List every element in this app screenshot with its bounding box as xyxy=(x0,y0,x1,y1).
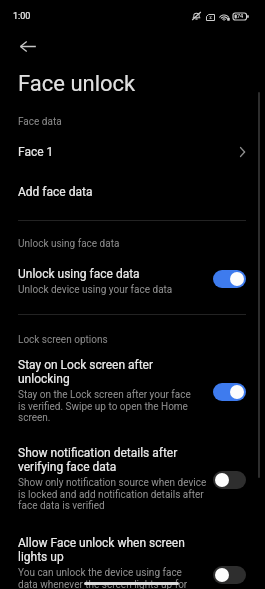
staticText: Face data xyxy=(18,116,62,128)
staticText: 74 xyxy=(237,13,244,19)
staticText: Face unlock xyxy=(18,71,136,97)
staticText: Face 1 xyxy=(18,145,54,159)
staticText: You can unlock the device using face dat… xyxy=(18,567,188,589)
button[interactable]: Add face data xyxy=(0,177,265,209)
button[interactable]: Unlock using face data xyxy=(0,259,265,303)
staticText: Add face data xyxy=(18,185,93,199)
staticText: Stay on the Lock screen after your face … xyxy=(18,389,191,423)
staticText: Unlock using face data xyxy=(18,267,140,281)
staticText: Lock screen options xyxy=(18,334,108,346)
button[interactable]: Toggle on xyxy=(213,383,246,401)
button[interactable]: Show notification details after verifyin… xyxy=(0,438,265,519)
button[interactable]: Toggle off xyxy=(213,471,246,489)
staticText: Show only notification source when devic… xyxy=(18,477,207,511)
staticText: Unlock using face data xyxy=(18,238,120,250)
button[interactable]: Toggle on xyxy=(213,270,246,288)
staticText: Allow Face unlock when screen lights up xyxy=(18,536,185,564)
button[interactable]: Stay on Lock screen after unlocking xyxy=(0,350,265,431)
staticText: Show notification details after verifyin… xyxy=(18,446,178,474)
button[interactable]: Back xyxy=(12,30,44,62)
staticText: Unlock device using your face data xyxy=(18,284,173,296)
button[interactable]: Face 1 xyxy=(0,137,265,169)
button[interactable]: Toggle off xyxy=(213,566,246,584)
staticText: 1:00 xyxy=(13,11,31,22)
staticText: Stay on Lock screen after unlocking xyxy=(18,358,154,386)
button[interactable]: Allow Face unlock when screen lights up xyxy=(0,528,265,589)
